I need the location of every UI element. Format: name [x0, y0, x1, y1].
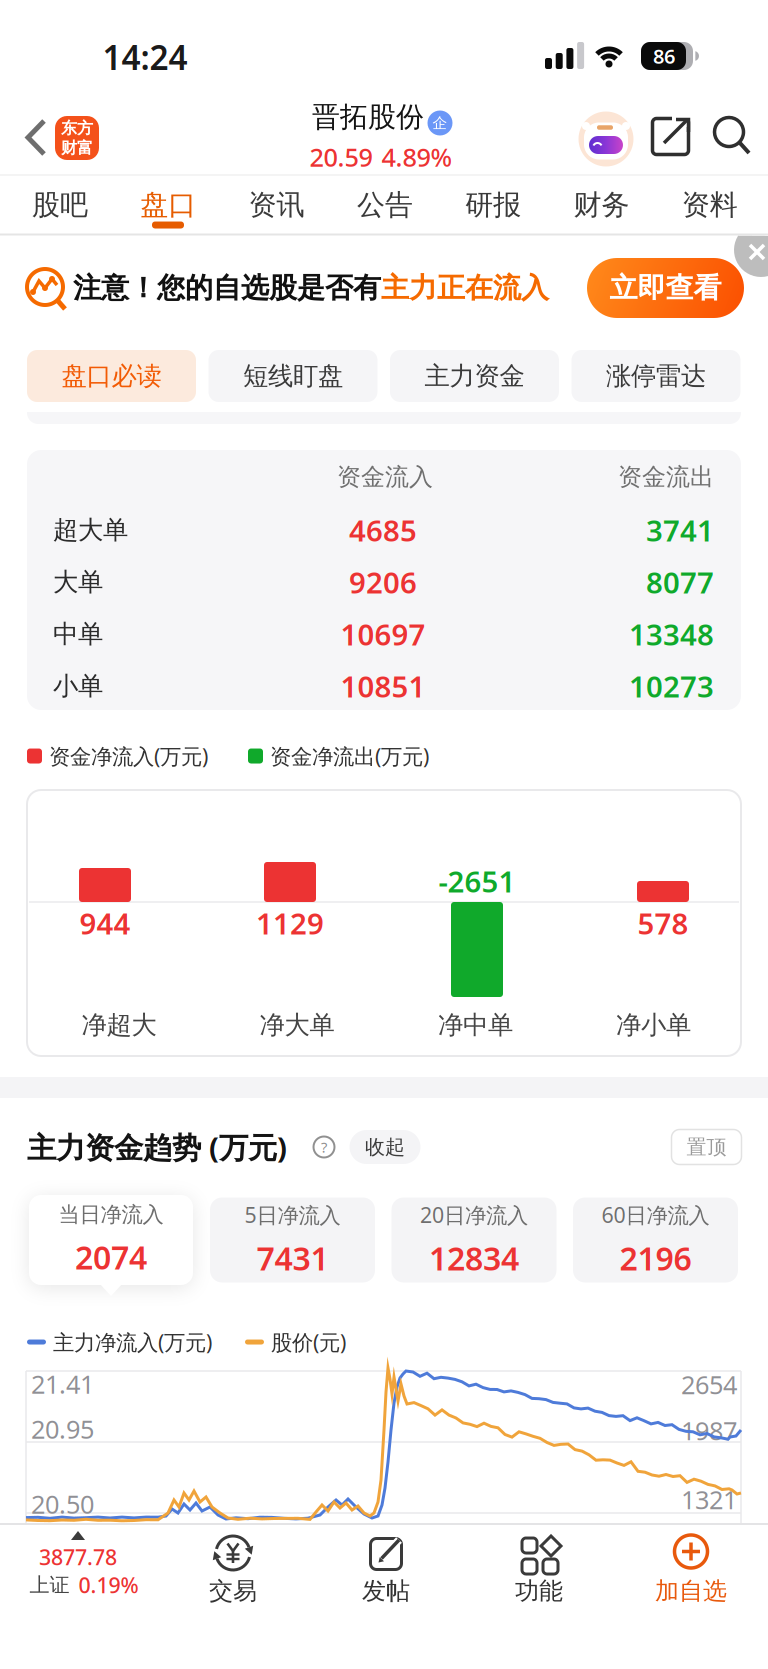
- staticText: 2654: [681, 1368, 737, 1401]
- button[interactable]: 帮助: [313, 1136, 334, 1157]
- staticText: 中单: [53, 618, 103, 649]
- button[interactable]: 返回: [0, 0, 768, 1669]
- staticText: 净小单: [616, 1009, 691, 1040]
- button[interactable]: 公告: [357, 188, 413, 222]
- staticText: 小单: [53, 670, 103, 701]
- button[interactable]: 主力资金: [390, 350, 559, 402]
- staticText: 10851: [340, 666, 425, 705]
- button[interactable]: 置顶: [671, 1129, 741, 1164]
- staticText: 晋拓股份: [312, 100, 424, 134]
- staticText: 公告: [357, 188, 413, 222]
- staticText: 10273: [629, 666, 714, 705]
- staticText: ?: [321, 1137, 327, 1157]
- staticText: 2074: [75, 1236, 147, 1278]
- staticText: 东方: [61, 118, 93, 138]
- button[interactable]: 盘口: [140, 188, 196, 222]
- staticText: 资金净流出(万元): [270, 742, 429, 770]
- staticText: -2651: [438, 861, 515, 900]
- staticText: 主力正在流入: [381, 271, 549, 305]
- staticText: 4685: [349, 510, 417, 549]
- staticText: 20.95: [31, 1412, 94, 1446]
- staticText: 21.41: [31, 1367, 94, 1401]
- button[interactable]: 涨停雷达: [571, 350, 740, 402]
- staticText: 1129: [256, 903, 324, 942]
- staticText: 股吧: [32, 188, 88, 222]
- button[interactable]: 分享: [0, 0, 768, 1669]
- button[interactable]: 立即查看: [587, 258, 744, 318]
- staticText: 8077: [646, 562, 714, 601]
- staticText: 主力资金: [424, 360, 524, 391]
- staticText: 净中单: [438, 1009, 513, 1040]
- button[interactable]: AI助手: [578, 111, 633, 166]
- staticText: 置顶: [686, 1135, 726, 1159]
- staticText: 盘口: [140, 188, 196, 222]
- staticText: 当日净流入: [58, 1202, 163, 1228]
- staticText: 短线盯盘: [243, 360, 343, 391]
- button[interactable]: 上证指数: [0, 0, 768, 1669]
- button[interactable]: 60日净流入: [573, 1197, 738, 1282]
- staticText: 超大单: [53, 514, 128, 545]
- staticText: 交易: [209, 1576, 257, 1606]
- staticText: 收起: [365, 1135, 405, 1159]
- staticText: 7431: [256, 1237, 328, 1279]
- staticText: 主力净流入(万元): [53, 1328, 212, 1356]
- staticText: 资金流出: [618, 462, 714, 492]
- staticText: 资料: [682, 188, 738, 222]
- staticText: 2196: [619, 1237, 691, 1279]
- button[interactable]: 搜索: [0, 0, 768, 1669]
- button[interactable]: 短线盯盘: [208, 350, 377, 402]
- button[interactable]: 盘口必读: [27, 350, 196, 402]
- staticText: 企: [432, 114, 447, 132]
- staticText: 1321: [681, 1483, 737, 1516]
- button[interactable]: 加自选: [0, 0, 768, 1669]
- staticText: 发帖: [362, 1576, 410, 1606]
- button[interactable]: 20日净流入: [391, 1197, 556, 1282]
- staticText: 60日净流入: [601, 1201, 709, 1229]
- staticText: 立即查看: [609, 271, 721, 305]
- staticText: 20.59: [309, 140, 372, 174]
- staticText: 功能: [515, 1576, 563, 1606]
- button[interactable]: 功能: [0, 0, 768, 1669]
- staticText: 资金流入: [337, 462, 433, 492]
- button[interactable]: 资讯: [249, 188, 305, 222]
- button[interactable]: 资料: [682, 188, 738, 222]
- button[interactable]: 发帖: [0, 0, 768, 1669]
- staticText: 注意！您的自选股是否有: [73, 271, 381, 305]
- staticText: 10697: [340, 614, 425, 653]
- staticText: 资金净流入(万元): [49, 742, 208, 770]
- staticText: 大单: [53, 566, 103, 597]
- button[interactable]: 5日净流入: [210, 1197, 375, 1282]
- staticText: 1987: [681, 1414, 737, 1447]
- staticText: 578: [637, 903, 688, 942]
- staticText: 股价(元): [271, 1328, 346, 1356]
- button[interactable]: 东方财富: [55, 116, 99, 160]
- staticText: 5日净流入: [244, 1201, 340, 1229]
- staticText: 9206: [349, 562, 417, 601]
- staticText: 4.89%: [381, 140, 452, 174]
- staticText: 20日净流入: [420, 1201, 528, 1229]
- staticText: 3877.78: [39, 1543, 117, 1571]
- staticText: 涨停雷达: [606, 360, 706, 391]
- staticText: 盘口必读: [61, 360, 161, 391]
- button[interactable]: 收起: [349, 1130, 420, 1164]
- button[interactable]: 股吧: [32, 188, 88, 222]
- staticText: 财务: [573, 188, 629, 222]
- staticText: 资讯: [249, 188, 305, 222]
- button[interactable]: 交易: [0, 0, 768, 1669]
- staticText: 944: [79, 903, 130, 942]
- staticText: 净大单: [259, 1009, 334, 1040]
- staticText: 净超大: [81, 1009, 156, 1040]
- staticText: 上证: [29, 1573, 69, 1597]
- button[interactable]: 关闭: [0, 0, 768, 1669]
- staticText: 86: [653, 43, 675, 69]
- button[interactable]: 财务: [573, 188, 629, 222]
- staticText: 12834: [429, 1237, 519, 1279]
- button[interactable]: 研报: [465, 188, 521, 222]
- staticText: 加自选: [655, 1576, 727, 1606]
- staticText: 3741: [646, 510, 714, 549]
- button[interactable]: 当日净流入: [29, 1195, 193, 1285]
- staticText: 主力资金趋势 (万元): [27, 1127, 287, 1166]
- staticText: 研报: [465, 188, 521, 222]
- staticText: 14:24: [102, 35, 187, 79]
- staticText: 13348: [629, 614, 714, 653]
